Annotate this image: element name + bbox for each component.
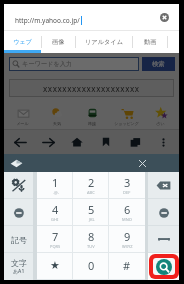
button[interactable]: ショッピング <box>110 106 143 126</box>
staticText: 1 <box>52 175 59 190</box>
staticText: MNO <box>122 217 132 222</box>
button[interactable]: リアルタイム <box>76 31 132 53</box>
button[interactable]: Forward <box>35 130 61 154</box>
staticText: DEF <box>123 190 131 195</box>
button[interactable]: メール <box>6 106 39 126</box>
button[interactable]: 動画 <box>133 31 167 53</box>
staticText: TUV <box>87 244 95 249</box>
button[interactable]: Menu <box>150 130 176 154</box>
button[interactable]: Tabs <box>122 130 148 154</box>
staticText: 8 <box>88 229 95 244</box>
button[interactable]: Settings <box>4 172 33 199</box>
staticText: 検索 <box>152 60 165 68</box>
staticText: ★ <box>50 259 60 272</box>
button[interactable]: Undo <box>4 199 33 226</box>
button[interactable]: 8 <box>73 226 109 253</box>
staticText: 記号 <box>11 235 27 245</box>
staticText: 7 <box>52 229 59 244</box>
staticText: 9 <box>124 229 131 244</box>
button[interactable]: http://m.yahoo.co.jp/ <box>4 4 179 31</box>
staticText: 路線 <box>88 121 96 126</box>
button[interactable]: Search <box>149 254 179 279</box>
button[interactable]: 路線 <box>75 106 108 126</box>
staticText: ABC <box>87 190 95 195</box>
staticText: PQRS <box>50 244 61 249</box>
staticText: 文字 <box>11 258 27 268</box>
staticText: 6 <box>124 202 131 217</box>
staticText: 動画 <box>144 38 157 46</box>
button[interactable]: 天気 <box>40 106 73 126</box>
button[interactable]: 検索 <box>142 57 175 71</box>
button[interactable]: Backspace <box>148 172 179 199</box>
button[interactable]: 6 <box>109 199 145 226</box>
staticText: 4 <box>52 202 59 217</box>
button[interactable]: 記号 <box>4 226 33 253</box>
staticText: WXYZ <box>122 244 133 249</box>
button[interactable]: Clear text <box>160 13 169 22</box>
staticText: GHI <box>51 217 59 222</box>
staticText: リアルタイム <box>85 38 123 46</box>
staticText: 2 <box>88 175 95 190</box>
button[interactable]: 0 <box>73 253 109 280</box>
button[interactable]: ウェブ <box>4 31 41 53</box>
button[interactable]: Home <box>64 130 90 154</box>
staticText: JKL <box>89 217 95 222</box>
button[interactable]: 7 <box>37 226 73 253</box>
button[interactable]: 文字 <box>4 253 33 280</box>
button[interactable]: Space <box>148 226 179 253</box>
button[interactable]: ★ <box>37 253 73 280</box>
staticText: http://m.yahoo.co.jp/ <box>15 16 80 25</box>
button[interactable]: 4 <box>37 199 73 226</box>
button[interactable]: Close keyboard <box>136 157 148 169</box>
staticText: あA1 <box>13 268 25 275</box>
staticText: .@- <box>53 190 59 195</box>
staticText: 0 <box>88 258 95 273</box>
button[interactable]: 9 <box>109 226 145 253</box>
staticText: xxxxxxxxxxxxxxxxxxxx <box>43 83 140 94</box>
button[interactable]: Back <box>7 130 33 154</box>
staticText: 天気 <box>53 121 61 126</box>
button[interactable]: 占い <box>144 106 177 126</box>
staticText: メール <box>16 121 29 126</box>
staticText: 画像 <box>52 38 65 46</box>
button[interactable]: 1 <box>37 172 73 199</box>
button[interactable]: 2 <box>73 172 109 199</box>
button[interactable]: 3 <box>109 172 145 199</box>
staticText: ショッピング <box>114 121 139 126</box>
button[interactable]: Bookmarks <box>93 130 119 154</box>
button[interactable]: キーワードを入力 <box>9 57 139 71</box>
button[interactable]: Move cursor right <box>148 199 179 226</box>
button[interactable]: Input method <box>9 156 24 171</box>
staticText: キーワードを入力 <box>22 60 73 68</box>
button[interactable]: # <box>109 253 145 280</box>
staticText: ウェブ <box>13 38 32 46</box>
staticText: # <box>123 258 131 273</box>
staticText: 5 <box>88 202 95 217</box>
button[interactable]: 画像 <box>42 31 75 53</box>
staticText: 占い <box>156 121 165 126</box>
staticText: 3 <box>124 175 131 190</box>
button[interactable]: 5 <box>73 199 109 226</box>
